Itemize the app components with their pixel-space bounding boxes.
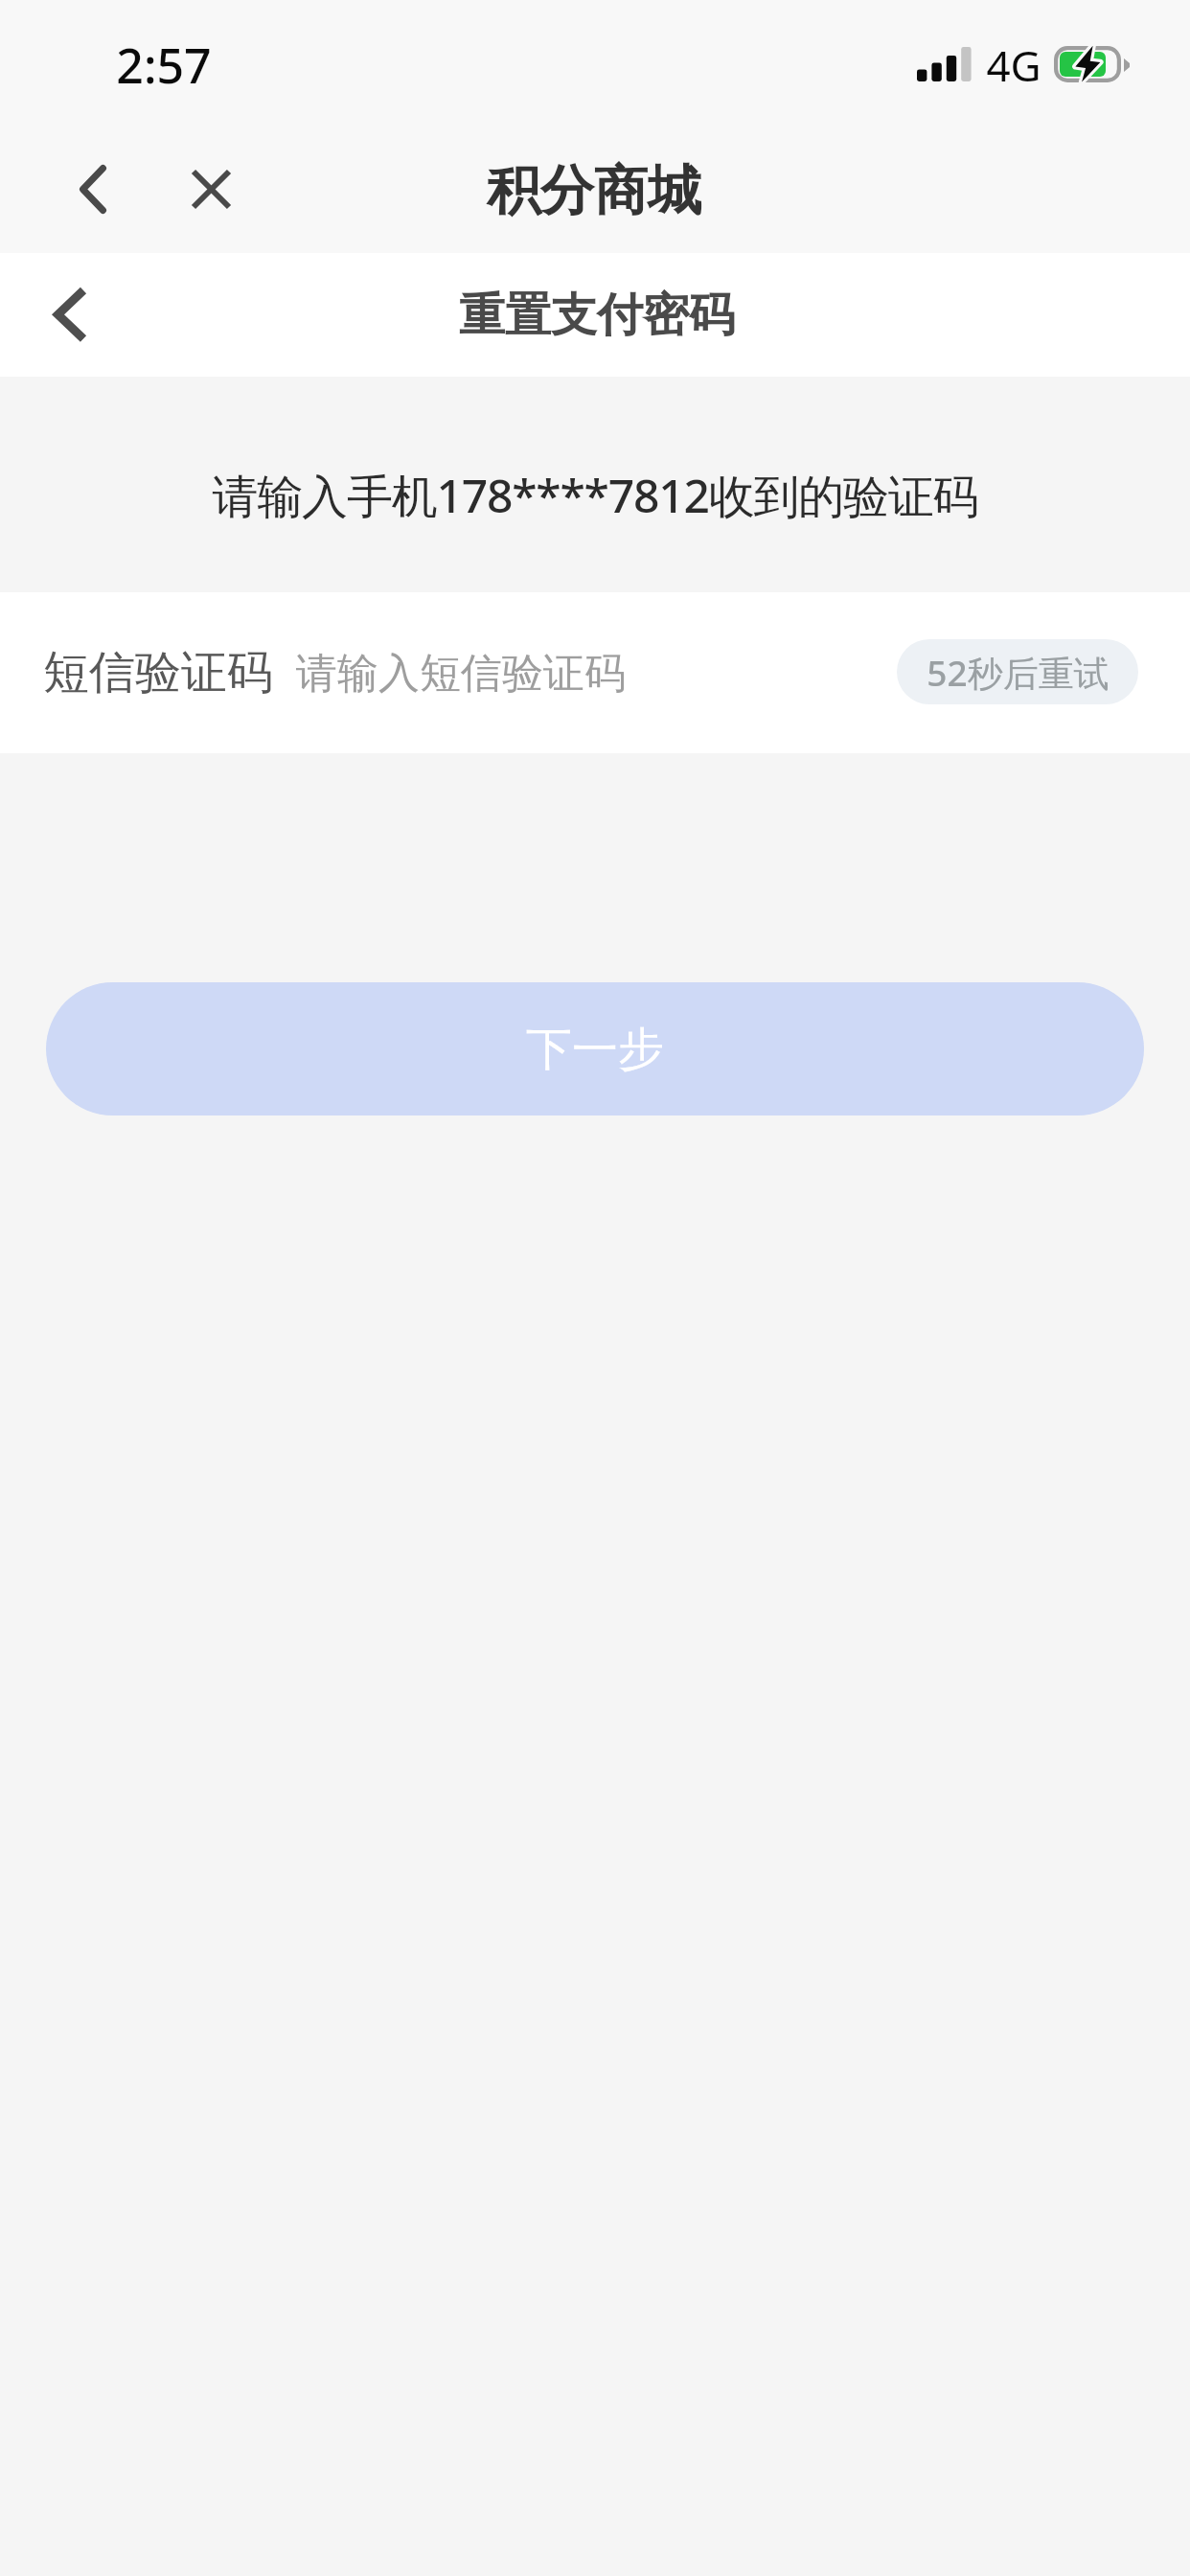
staticText: 重置支付密码 — [459, 287, 735, 344]
staticText: 请输入短信验证码 — [296, 648, 626, 700]
staticText: 2:57 — [116, 33, 212, 98]
button[interactable]: 52秒后重试 — [897, 639, 1138, 704]
staticText: 积分商城 — [487, 157, 701, 225]
button[interactable]: 请输入短信验证码 — [294, 615, 869, 730]
button[interactable]: 下一步 — [46, 982, 1144, 1115]
staticText: 请输入手机178****7812收到的验证码 — [212, 464, 978, 527]
staticText: 下一步 — [526, 1021, 664, 1078]
staticText: 4G — [986, 36, 1041, 94]
staticText: 短信验证码 — [43, 644, 273, 701]
staticText: 52秒后重试 — [927, 648, 1110, 697]
button[interactable]: Close — [172, 150, 251, 229]
button[interactable]: Back — [29, 261, 109, 368]
button[interactable]: Back — [57, 142, 129, 238]
